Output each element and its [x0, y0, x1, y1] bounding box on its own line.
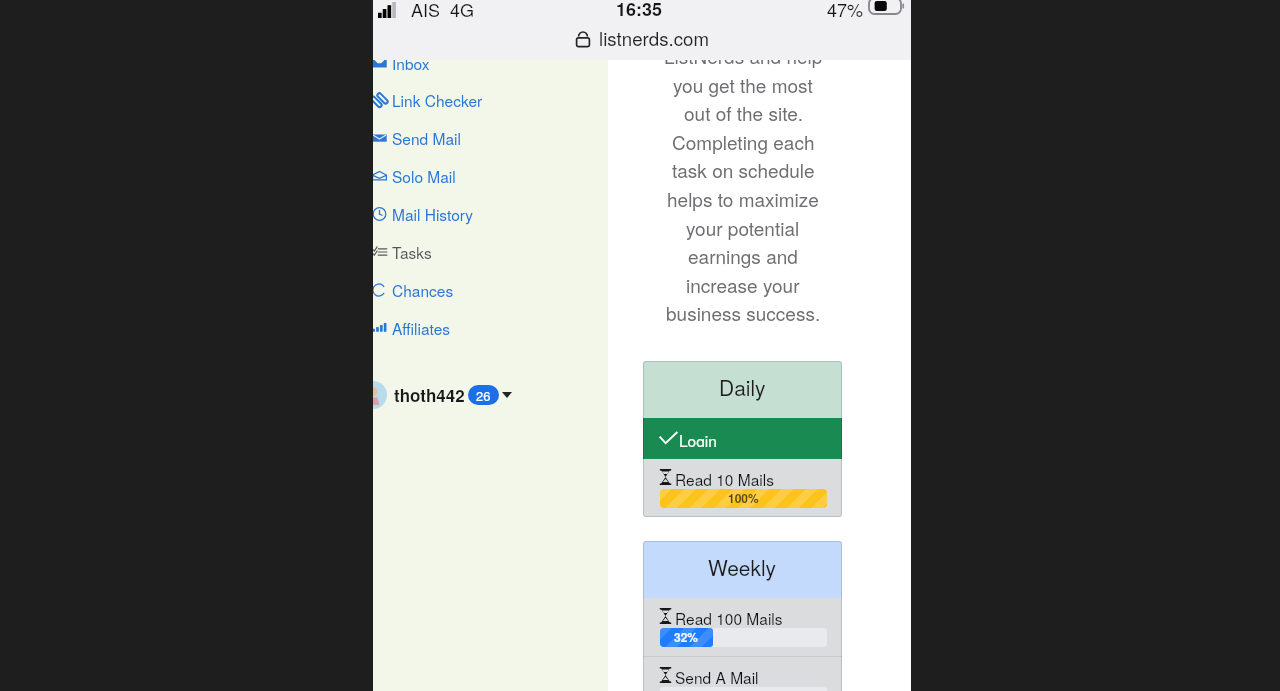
button[interactable]: Chances [373, 275, 608, 305]
staticText: helps to maximize [667, 185, 819, 212]
staticText: task on schedule [672, 156, 815, 183]
button[interactable]: Affiliates [373, 313, 608, 343]
staticText: Read 100 Mails [675, 607, 783, 625]
staticText: Link Checker [392, 89, 483, 111]
staticText: AIS 4G [411, 0, 475, 18]
staticText: Mail History [392, 203, 474, 225]
staticText: Tasks [392, 241, 432, 263]
staticText: Login [679, 429, 717, 447]
button[interactable]: thoth442 [373, 379, 519, 411]
staticText: Solo Mail [392, 165, 456, 187]
staticText: listnerds.com [599, 25, 709, 52]
staticText: Send Mail [392, 127, 461, 149]
staticText: ListNerds and help [664, 42, 823, 69]
staticText: 100% [728, 489, 759, 506]
button[interactable]: Send Mail [373, 123, 608, 153]
staticText: Inbox [392, 52, 430, 74]
staticText: your potential [686, 214, 800, 241]
button[interactable]: Solo Mail [373, 161, 608, 191]
button[interactable]: Read 10 Mails [643, 459, 842, 517]
button[interactable]: Tasks [373, 237, 608, 267]
staticText: thoth442 [394, 383, 465, 407]
button[interactable]: Link Checker [373, 85, 608, 115]
staticText: you get the most [673, 71, 813, 98]
staticText: Weekly [708, 552, 777, 582]
staticText: Daily [719, 372, 766, 402]
staticText: Read 10 Mails [675, 468, 774, 486]
staticText: out of the site. [684, 99, 803, 126]
staticText: Chances [392, 279, 454, 301]
button[interactable]: Mail History [373, 199, 608, 229]
staticText: 32% [674, 628, 699, 645]
staticText: Affiliates [392, 317, 451, 339]
staticText: 26 [476, 386, 491, 405]
button[interactable]: Read 100 Mails [643, 598, 842, 656]
staticText: earnings and [688, 242, 798, 269]
staticText: 47% [827, 0, 864, 18]
staticText: business success. [666, 299, 821, 326]
button[interactable]: Send A Mail [643, 657, 842, 691]
staticText: Completing each [672, 128, 815, 155]
staticText: Send A Mail [675, 666, 759, 684]
other: Account menu [502, 392, 512, 398]
button[interactable]: Login [643, 418, 842, 459]
staticText: 16:35 [616, 0, 663, 18]
staticText: increase your [686, 271, 800, 298]
button[interactable]: Inbox [373, 48, 608, 78]
